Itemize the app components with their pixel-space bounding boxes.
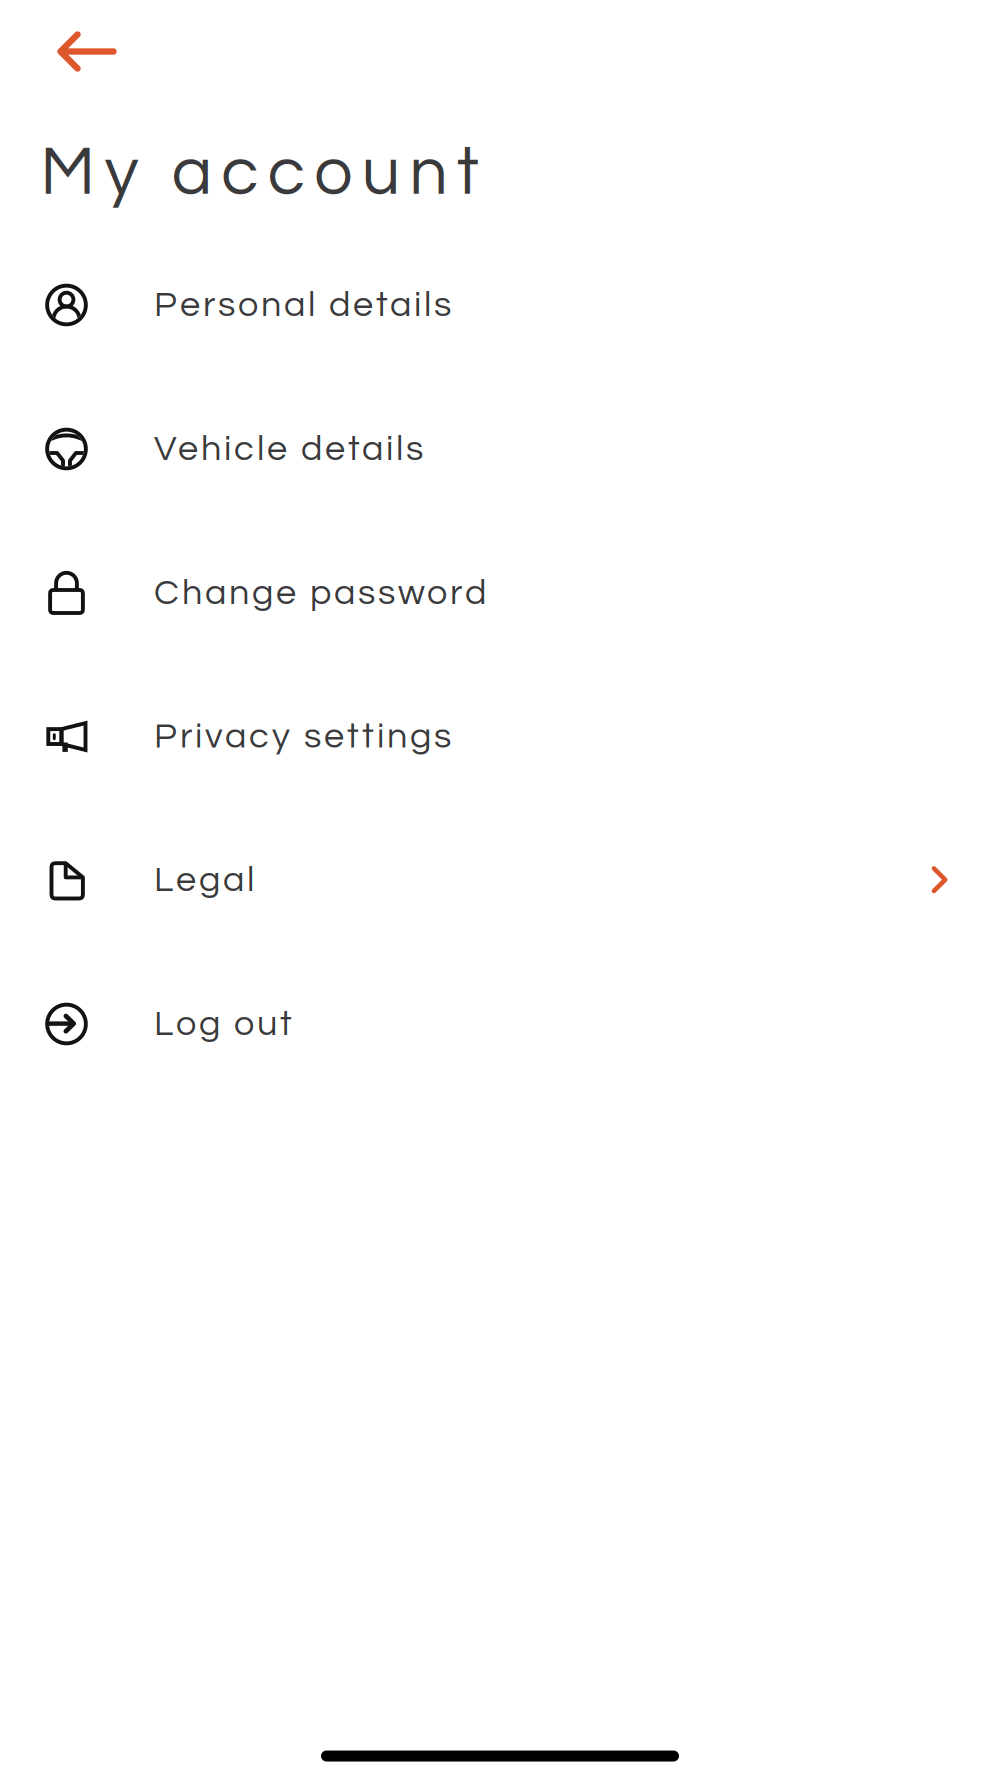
staticText: Log out (154, 1005, 292, 1043)
staticText: My account (40, 138, 479, 208)
button[interactable]: Back (32, 7, 142, 96)
button[interactable]: Change password (0, 534, 1000, 652)
staticText: Legal (154, 861, 254, 899)
button[interactable]: Legal (0, 821, 1000, 939)
staticText: Privacy settings (154, 718, 451, 755)
button[interactable]: Log out (0, 965, 1000, 1083)
button[interactable]: Personal details (0, 246, 1000, 364)
button[interactable]: Vehicle details (0, 390, 1000, 508)
button[interactable]: Privacy settings (0, 677, 1000, 795)
staticText: Change password (154, 574, 486, 612)
staticText: Personal details (154, 286, 451, 324)
staticText: Vehicle details (154, 430, 423, 468)
